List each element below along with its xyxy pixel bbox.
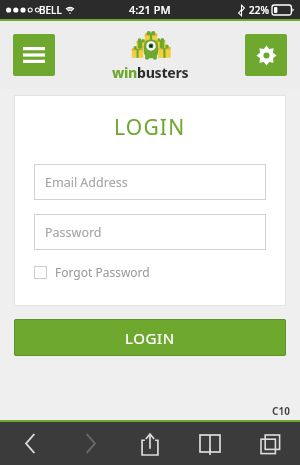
button[interactable]: Password (34, 214, 266, 250)
button[interactable]: Menu (13, 34, 55, 76)
button[interactable]: Share (120, 422, 180, 465)
staticText: Password (45, 224, 102, 241)
staticText: LOGIN (125, 328, 175, 348)
staticText: BELL (39, 3, 62, 17)
button[interactable]: Tabs (240, 422, 300, 465)
staticText: 4:21 PM (129, 2, 171, 17)
staticText: winbusters (112, 63, 189, 82)
button[interactable]: Settings (245, 34, 287, 76)
staticText: C10 (272, 404, 290, 418)
button[interactable]: Forgot Password (34, 264, 266, 280)
button[interactable]: Forward (60, 422, 120, 465)
button[interactable]: Back (0, 422, 60, 465)
staticText: LOGIN (114, 113, 186, 142)
button[interactable]: Email Address (34, 164, 266, 200)
button[interactable]: LOGIN (14, 319, 286, 356)
staticText: Forgot Password (55, 264, 150, 280)
staticText: 22% (249, 3, 269, 17)
button[interactable]: Bookmarks (180, 422, 240, 465)
staticText: Email Address (45, 174, 128, 191)
